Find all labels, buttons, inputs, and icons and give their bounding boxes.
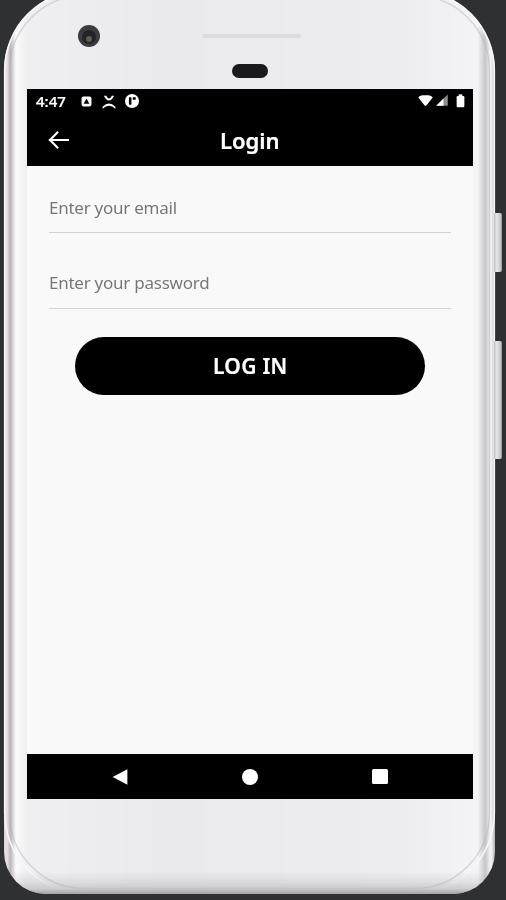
staticText: Enter your password xyxy=(49,271,210,294)
staticText: 4:47 xyxy=(36,91,66,111)
button[interactable]: Back xyxy=(36,118,80,162)
button[interactable]: LOG IN xyxy=(75,337,425,395)
button[interactable]: Back xyxy=(55,754,185,799)
button[interactable]: Home xyxy=(185,754,315,799)
button[interactable]: Enter your password xyxy=(49,271,451,309)
staticText: LOG IN xyxy=(213,352,288,381)
staticText: Login xyxy=(220,125,280,155)
staticText: Enter your email xyxy=(49,196,177,219)
button[interactable]: Recent apps xyxy=(315,754,445,799)
button[interactable]: Enter your email xyxy=(49,196,451,233)
